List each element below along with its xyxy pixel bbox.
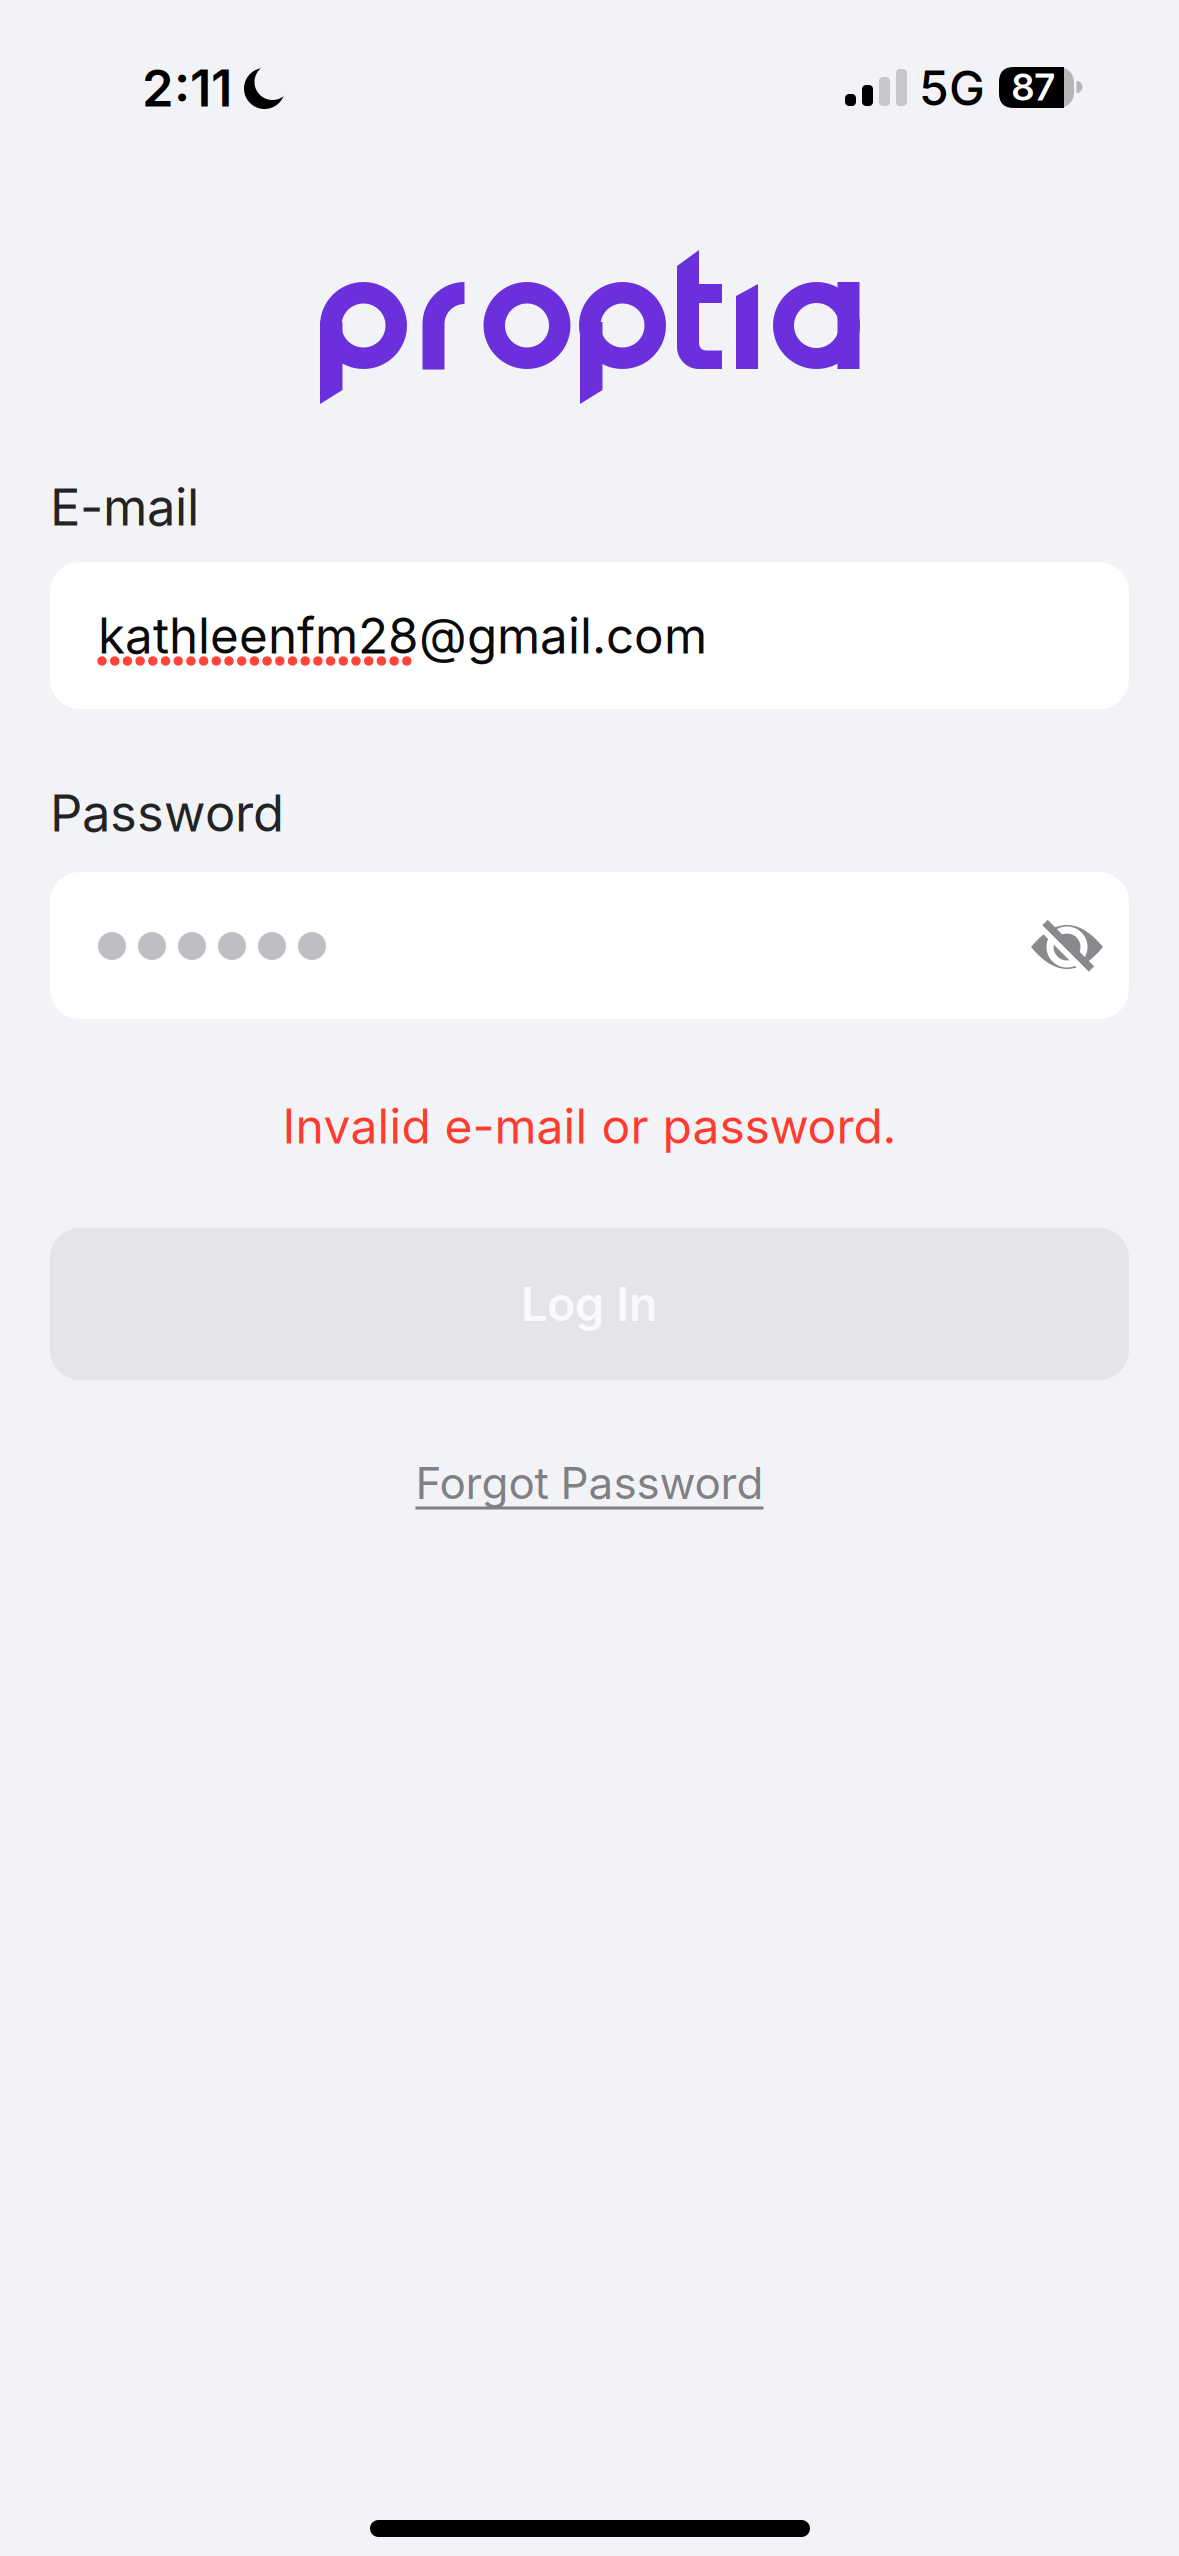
staticText: Password: [50, 783, 284, 843]
button[interactable]: kathleenfm28@gmail.com: [50, 562, 1129, 709]
staticText: Log In: [521, 1276, 658, 1332]
button[interactable]: Show password: [1017, 897, 1117, 997]
staticText: Invalid e-mail or password.: [282, 1098, 896, 1154]
staticText: 2:11: [142, 58, 232, 118]
staticText: kathleenfm28@gmail.com: [98, 606, 707, 665]
button[interactable]: Forgot Password: [415, 1457, 763, 1509]
staticText: Forgot Password: [415, 1457, 763, 1509]
staticText: 5G: [919, 60, 985, 116]
staticText: 87: [1011, 65, 1054, 109]
staticText: E-mail: [50, 477, 199, 537]
button[interactable]: [50, 872, 1129, 1019]
